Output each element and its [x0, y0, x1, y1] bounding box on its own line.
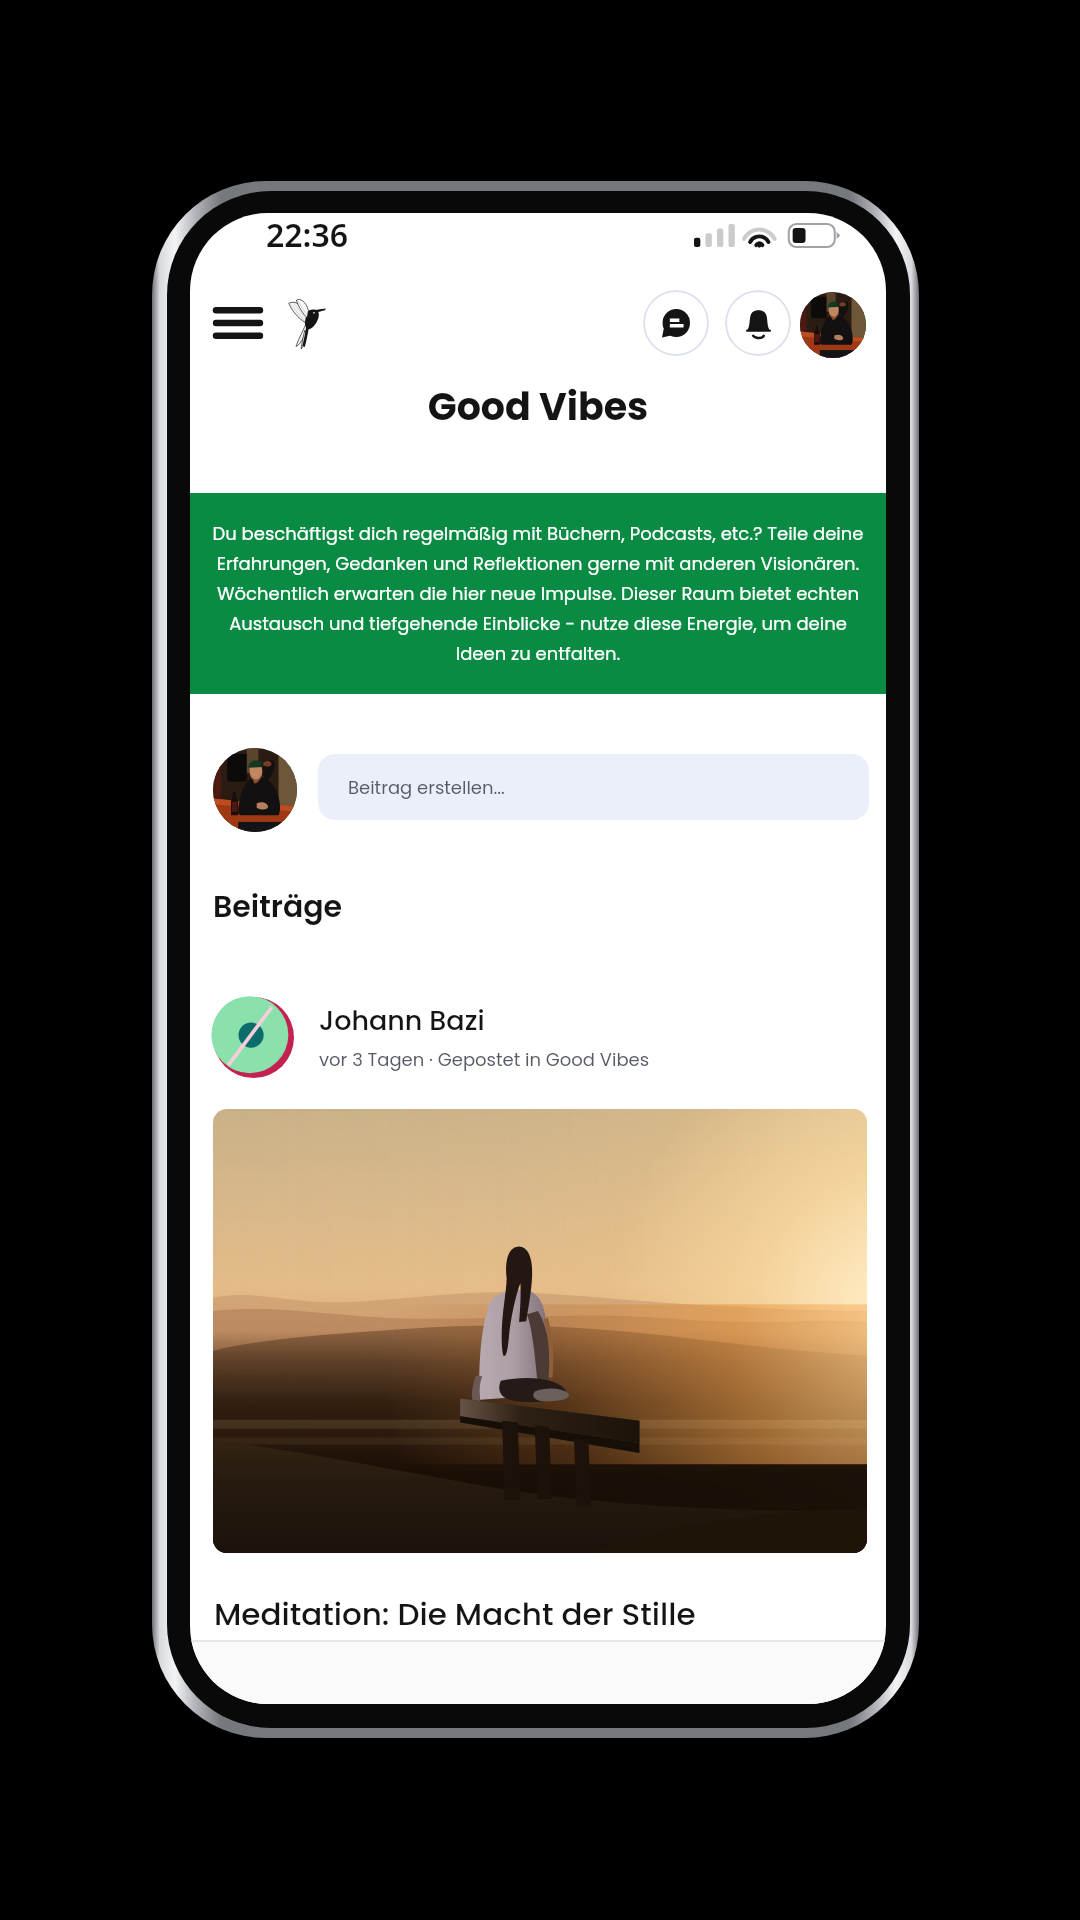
staticText: Meditation: Die Macht der Stille [214, 1592, 696, 1635]
button[interactable] [213, 748, 297, 832]
button[interactable]: Your profile [800, 292, 866, 358]
staticText: Du beschäftigst dich regelmäßig mit Büch… [212, 521, 864, 666]
button[interactable]: Open navigation menu [210, 299, 266, 347]
staticText: 22:36 [266, 213, 349, 257]
staticText: vor 3 Tagen · Gepostet in Good Vibes [319, 1047, 650, 1072]
staticText: Beitrag erstellen... [348, 775, 505, 800]
staticText: Johann Bazi [319, 1002, 485, 1040]
button[interactable]: Beitrag erstellen... [318, 754, 869, 820]
button[interactable]: Notifications [725, 290, 791, 356]
button[interactable]: Messages [643, 290, 709, 356]
staticText: Good Vibes [190, 380, 886, 433]
button[interactable] [213, 1109, 867, 1553]
staticText: Beiträge [213, 886, 343, 928]
button[interactable] [300, 988, 780, 1088]
